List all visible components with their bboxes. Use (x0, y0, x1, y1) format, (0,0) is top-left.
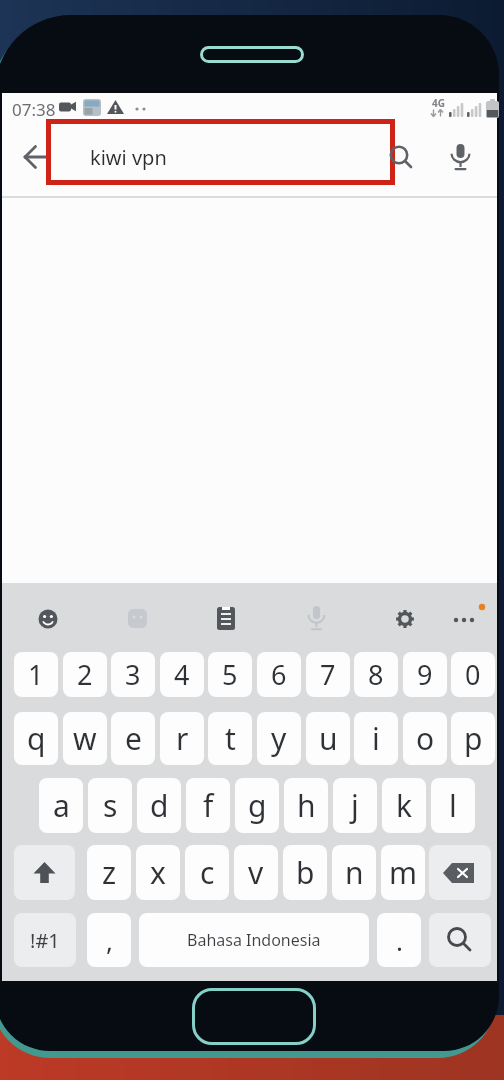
button[interactable]: o (403, 712, 447, 765)
staticText: 1 (28, 656, 44, 693)
staticText: e (125, 718, 142, 759)
button[interactable] (192, 988, 316, 1045)
button[interactable]: u (306, 712, 350, 765)
staticText: m (389, 852, 418, 893)
button[interactable] (391, 604, 419, 633)
staticText: d (150, 785, 169, 826)
button[interactable]: p (451, 712, 495, 765)
staticText: o (416, 718, 435, 759)
button[interactable]: e (111, 712, 155, 765)
button[interactable]: y (257, 712, 301, 765)
staticText: n (345, 852, 364, 893)
button[interactable]: n (332, 845, 376, 900)
button[interactable] (444, 139, 476, 175)
staticText: 4G (432, 96, 445, 108)
button[interactable]: t (208, 712, 252, 765)
staticText: v (248, 852, 264, 893)
staticText: u (319, 718, 338, 759)
button[interactable]: 7 (306, 652, 350, 697)
staticText: . (396, 923, 403, 958)
staticText: 2 (77, 656, 93, 693)
button[interactable]: r (160, 712, 204, 765)
button[interactable] (429, 845, 491, 900)
button[interactable]: w (63, 712, 107, 765)
button[interactable]: 5 (208, 652, 252, 697)
staticText: f (203, 785, 214, 826)
button[interactable]: 9 (403, 652, 447, 697)
staticText: j (351, 785, 359, 826)
staticText: t (225, 718, 236, 759)
button[interactable] (124, 605, 151, 632)
button[interactable]: k (382, 778, 426, 833)
button[interactable]: b (283, 845, 327, 900)
button[interactable]: s (88, 778, 132, 833)
button[interactable] (429, 913, 491, 967)
button[interactable]: 1 (14, 652, 58, 697)
button[interactable]: Bahasa Indonesia (139, 913, 369, 967)
button[interactable]: v (234, 845, 278, 900)
button[interactable] (448, 604, 488, 633)
button[interactable] (385, 141, 417, 173)
staticText: 8 (368, 656, 384, 693)
staticText: , (106, 923, 113, 958)
staticText: x (150, 852, 166, 893)
staticText: 07:38 (12, 98, 56, 120)
staticText: s (103, 785, 118, 826)
button[interactable]: f (186, 778, 230, 833)
button[interactable]: !#1 (14, 913, 76, 967)
button[interactable] (33, 604, 62, 633)
staticText: w (73, 718, 97, 759)
staticText: h (297, 785, 316, 826)
staticText: c (200, 852, 215, 893)
button[interactable]: l (431, 778, 475, 833)
staticText: k (396, 785, 413, 826)
button[interactable]: 4 (160, 652, 204, 697)
staticText: 4 (174, 656, 190, 693)
button[interactable] (212, 603, 239, 633)
button[interactable]: , (87, 913, 131, 967)
button[interactable]: a (39, 778, 83, 833)
staticText: 3 (125, 656, 141, 693)
staticText: l (449, 785, 457, 826)
staticText: z (102, 852, 117, 893)
button[interactable]: 0 (451, 652, 495, 697)
button[interactable]: i (354, 712, 398, 765)
button[interactable]: 8 (354, 652, 398, 697)
button[interactable]: 3 (111, 652, 155, 697)
button[interactable]: kiwi vpn (88, 143, 168, 171)
staticText: i (372, 718, 380, 759)
staticText: y (271, 718, 287, 759)
staticText: Bahasa Indonesia (187, 929, 321, 951)
staticText: q (27, 718, 46, 759)
staticText: 5 (222, 656, 238, 693)
button[interactable] (16, 136, 58, 178)
staticText: 9 (417, 656, 433, 693)
button[interactable]: j (333, 778, 377, 833)
button[interactable] (303, 604, 329, 633)
staticText: 7 (320, 656, 336, 693)
button[interactable]: q (14, 712, 58, 765)
button[interactable] (14, 845, 75, 900)
staticText: p (464, 718, 483, 759)
button[interactable]: 2 (63, 652, 107, 697)
staticText: 6 (271, 656, 287, 693)
button[interactable]: z (87, 845, 131, 900)
staticText: r (176, 718, 189, 759)
button[interactable]: 6 (257, 652, 301, 697)
button[interactable]: d (137, 778, 181, 833)
button[interactable]: g (235, 778, 279, 833)
button[interactable]: . (377, 913, 421, 967)
staticText: kiwi vpn (90, 144, 167, 171)
staticText: !#1 (30, 927, 60, 954)
button[interactable]: x (136, 845, 180, 900)
staticText: a (53, 785, 70, 826)
staticText: 0 (465, 656, 481, 693)
button[interactable]: m (381, 845, 425, 900)
staticText: b (296, 852, 315, 893)
button[interactable]: c (185, 845, 229, 900)
button[interactable]: h (284, 778, 328, 833)
staticText: g (248, 785, 267, 826)
